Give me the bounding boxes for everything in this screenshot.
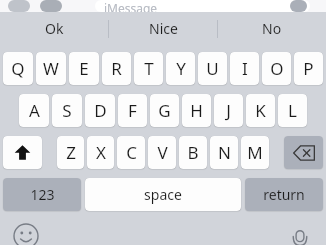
button[interactable]: K xyxy=(246,94,275,127)
staticText: B xyxy=(187,141,199,164)
button[interactable]: T xyxy=(134,52,163,85)
button[interactable]: A xyxy=(19,94,49,127)
staticText: J xyxy=(226,99,231,122)
staticText: P xyxy=(303,57,314,80)
button[interactable]: No xyxy=(218,12,326,45)
button[interactable]: D xyxy=(85,94,115,127)
button[interactable]: V xyxy=(148,136,176,169)
button[interactable]: C xyxy=(117,136,145,169)
button[interactable]: Q xyxy=(3,52,33,85)
staticText: T xyxy=(144,57,154,80)
staticText: Y xyxy=(176,57,186,80)
staticText: A xyxy=(29,99,40,122)
staticText: W xyxy=(43,57,59,80)
staticText: space xyxy=(144,185,182,204)
button[interactable]: G xyxy=(150,94,179,127)
button[interactable]: Send xyxy=(290,0,307,12)
button[interactable]: R xyxy=(102,52,131,85)
staticText: S xyxy=(62,99,72,122)
button[interactable]: Backspace xyxy=(284,136,323,169)
button[interactable]: iMessage xyxy=(95,0,310,12)
button[interactable]: Ok xyxy=(0,12,108,45)
button[interactable]: Camera xyxy=(8,0,30,12)
button[interactable]: 123 xyxy=(3,178,81,211)
button[interactable]: J xyxy=(214,94,243,127)
staticText: Ok xyxy=(45,19,64,38)
staticText: L xyxy=(288,99,297,122)
button[interactable]: Apps xyxy=(40,0,62,12)
staticText: I xyxy=(242,57,248,80)
staticText: R xyxy=(111,57,122,80)
button[interactable]: return xyxy=(245,178,323,211)
button[interactable]: L xyxy=(278,94,307,127)
button[interactable]: O xyxy=(262,52,291,85)
button[interactable]: W xyxy=(36,52,66,85)
button[interactable]: U xyxy=(198,52,227,85)
staticText: X xyxy=(96,141,106,164)
staticText: U xyxy=(206,57,219,80)
button[interactable]: space xyxy=(85,178,241,211)
staticText: Nice xyxy=(149,19,178,38)
staticText: G xyxy=(158,99,171,122)
staticText: Q xyxy=(11,57,25,80)
button[interactable]: E xyxy=(69,52,99,85)
button[interactable]: X xyxy=(87,136,114,169)
staticText: F xyxy=(128,99,137,122)
button[interactable]: M xyxy=(241,136,269,169)
button[interactable]: P xyxy=(294,52,323,85)
staticText: 123 xyxy=(30,185,55,204)
button[interactable]: H xyxy=(182,94,211,127)
button[interactable]: Nice xyxy=(109,12,217,45)
staticText: O xyxy=(270,57,284,80)
staticText: Z xyxy=(66,141,76,164)
button[interactable]: N xyxy=(210,136,238,169)
staticText: return xyxy=(263,185,305,204)
staticText: M xyxy=(247,141,263,164)
button[interactable]: Y xyxy=(166,52,195,85)
button[interactable]: Z xyxy=(57,136,84,169)
staticText: V xyxy=(157,141,168,164)
staticText: No xyxy=(262,19,282,38)
button[interactable]: F xyxy=(118,94,147,127)
staticText: H xyxy=(190,99,203,122)
staticText: N xyxy=(218,141,231,164)
button[interactable]: Emoji xyxy=(13,219,39,245)
button[interactable]: Dictation xyxy=(287,219,313,245)
staticText: D xyxy=(94,99,107,122)
staticText: E xyxy=(79,57,89,80)
staticText: K xyxy=(255,99,266,122)
staticText: iMessage xyxy=(104,0,158,12)
button[interactable]: I xyxy=(230,52,259,85)
button[interactable]: S xyxy=(52,94,82,127)
button[interactable]: B xyxy=(179,136,207,169)
button[interactable]: Shift xyxy=(3,136,42,169)
staticText: C xyxy=(126,141,137,164)
